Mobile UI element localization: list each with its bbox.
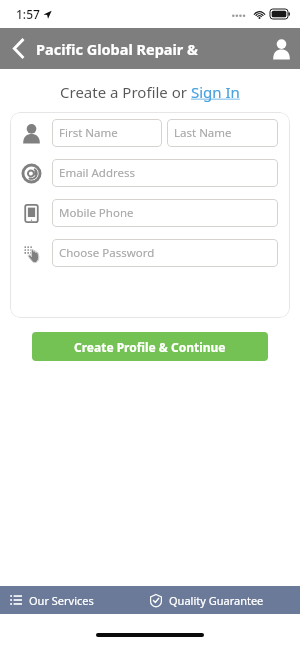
button[interactable]: Back — [0, 28, 36, 69]
staticText: Pacific Global Repair & Mainte… — [36, 39, 262, 59]
staticText: Create Profile & Continue — [74, 339, 226, 355]
button[interactable]: Create Profile & Continue — [32, 332, 268, 361]
staticText: Last Name — [174, 125, 232, 141]
button[interactable]: Quality Guarantee — [150, 586, 300, 614]
staticText: 1:57 — [16, 6, 40, 22]
button[interactable]: Last Name — [167, 119, 278, 147]
button[interactable]: Our Services — [0, 586, 150, 614]
staticText: Quality Guarantee — [169, 593, 264, 608]
button[interactable]: Account — [262, 28, 300, 69]
staticText: Sign In — [191, 82, 240, 102]
staticText: Create a Profile or — [60, 82, 191, 102]
staticText: Our Services — [29, 593, 94, 608]
staticText: Email Address — [59, 165, 136, 181]
button[interactable]: Email Address — [52, 159, 278, 187]
button[interactable]: Mobile Phone — [52, 199, 278, 227]
button[interactable]: Sign In — [191, 82, 240, 102]
staticText: Choose Password — [59, 245, 155, 261]
button[interactable]: Choose Password — [52, 239, 278, 267]
staticText: Mobile Phone — [59, 205, 134, 221]
button[interactable]: First Name — [52, 119, 162, 147]
staticText: First Name — [59, 125, 118, 141]
